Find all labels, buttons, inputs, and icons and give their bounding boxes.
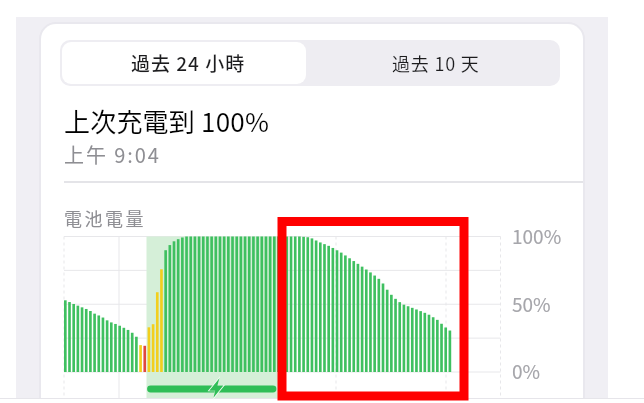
staticText: 50% xyxy=(512,290,551,318)
button[interactable]: 過去 24 小時 xyxy=(62,42,306,84)
staticText: 100% xyxy=(512,222,562,250)
button[interactable]: 過去 10 天 xyxy=(308,40,560,86)
staticText: 電池電量 xyxy=(64,205,146,231)
staticText: 上午 9:04 xyxy=(64,140,161,169)
staticText: 上次充電到 100% xyxy=(64,102,270,140)
staticText: 過去 24 小時 xyxy=(131,49,246,77)
staticText: 過去 10 天 xyxy=(392,50,480,76)
staticText: 0% xyxy=(512,357,541,385)
